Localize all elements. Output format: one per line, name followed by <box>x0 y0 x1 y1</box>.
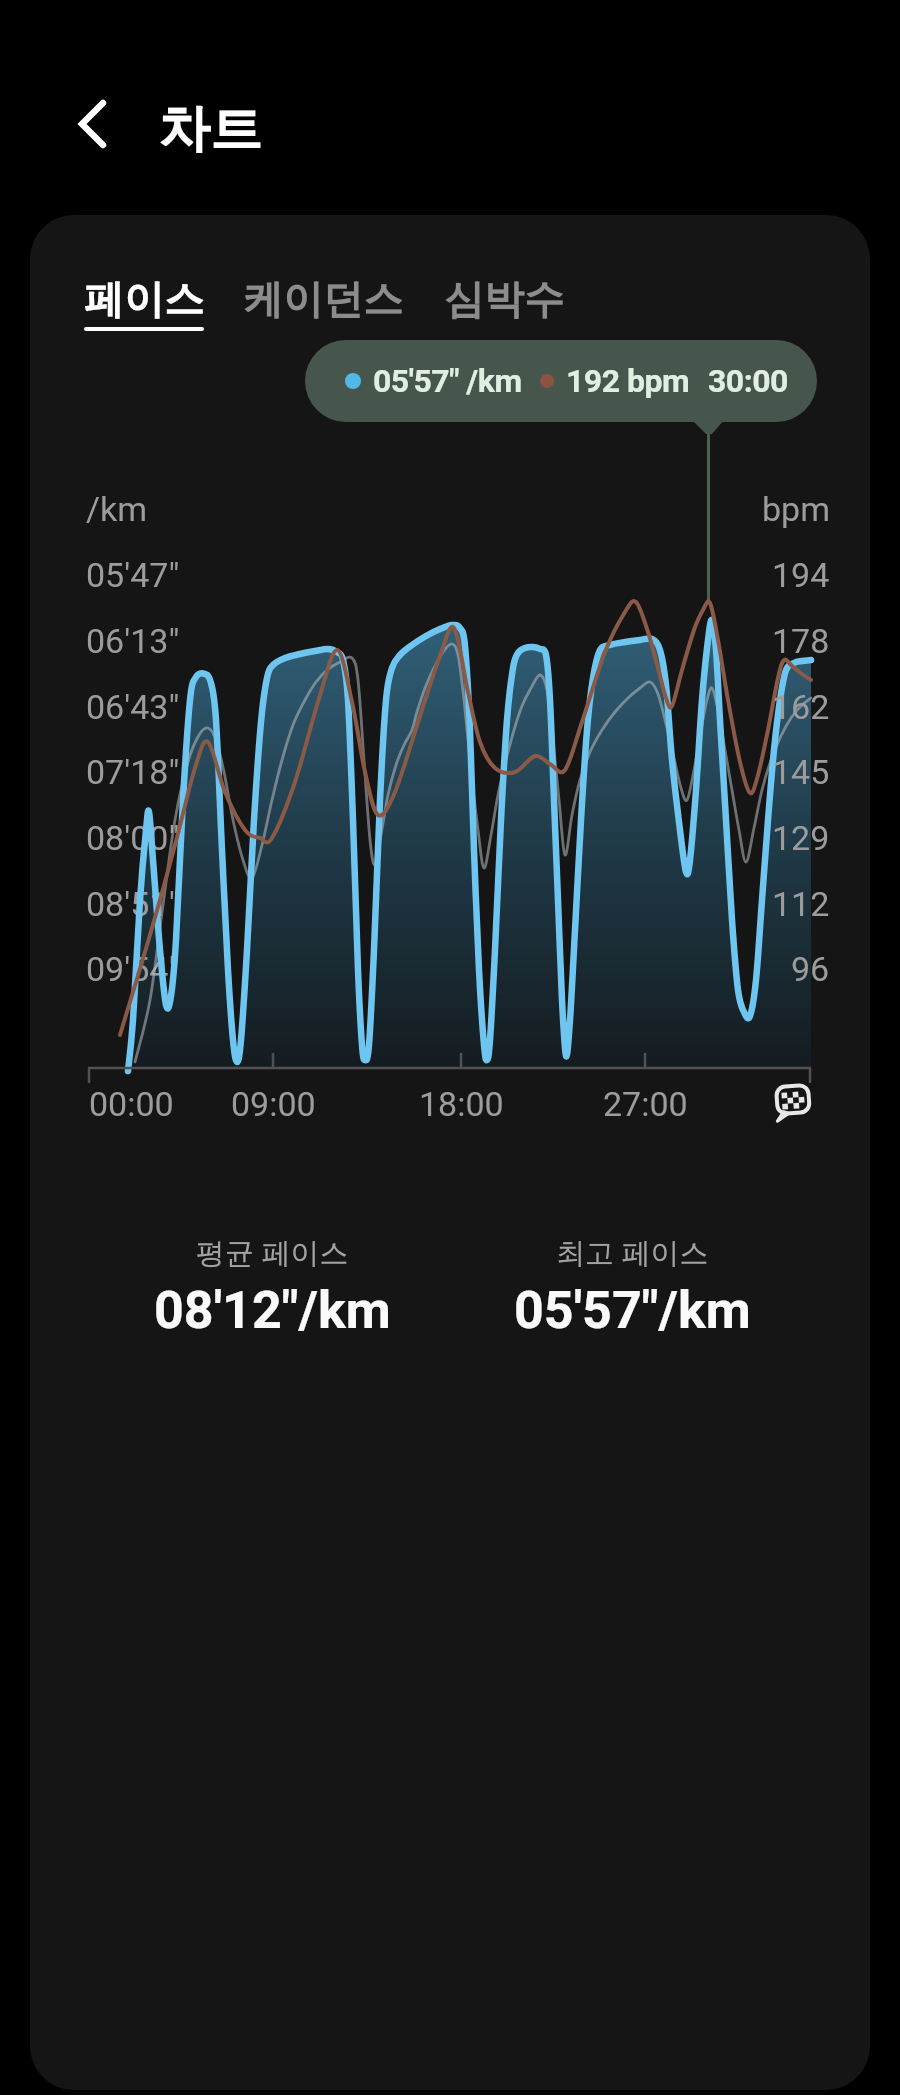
staticText: 112 <box>772 884 830 924</box>
staticText: 06'43" <box>86 687 180 727</box>
button[interactable]: 심박수 <box>436 268 572 330</box>
staticText: 178 <box>772 621 830 661</box>
staticText: 심박수 <box>444 274 564 324</box>
staticText: 09:00 <box>231 1084 316 1124</box>
staticText: 27:00 <box>603 1084 688 1124</box>
staticText: 05'57" /km <box>373 362 522 400</box>
staticText: 케이던스 <box>243 274 403 324</box>
staticText: 30:00 <box>708 362 788 400</box>
staticText: 차트 <box>158 97 262 153</box>
staticText: 평균 페이스 <box>196 1232 349 1272</box>
staticText: 05'57"/km <box>514 1280 751 1341</box>
button[interactable] <box>64 92 120 156</box>
staticText: 08'00" <box>86 818 180 858</box>
staticText: 06'13" <box>86 621 180 661</box>
staticText: bpm <box>762 489 830 529</box>
staticText: 05'47" <box>86 555 180 595</box>
staticText: 페이스 <box>84 274 204 324</box>
button[interactable]: 페이스 <box>76 268 212 330</box>
button[interactable]: 케이던스 <box>238 268 408 330</box>
staticText: 192 bpm <box>566 362 690 400</box>
staticText: 00:00 <box>89 1084 174 1124</box>
staticText: 96 <box>791 949 830 989</box>
staticText: 18:00 <box>419 1084 504 1124</box>
staticText: 194 <box>772 555 830 595</box>
staticText: 07'18" <box>86 752 180 792</box>
staticText: 129 <box>772 818 830 858</box>
staticText: 최고 페이스 <box>556 1232 709 1272</box>
staticText: 145 <box>772 752 830 792</box>
staticText: /km <box>86 489 148 529</box>
staticText: 09'54" <box>86 949 180 989</box>
staticText: 08'12"/km <box>154 1280 391 1341</box>
staticText: 08'51" <box>86 884 180 924</box>
staticText: 162 <box>772 687 830 727</box>
